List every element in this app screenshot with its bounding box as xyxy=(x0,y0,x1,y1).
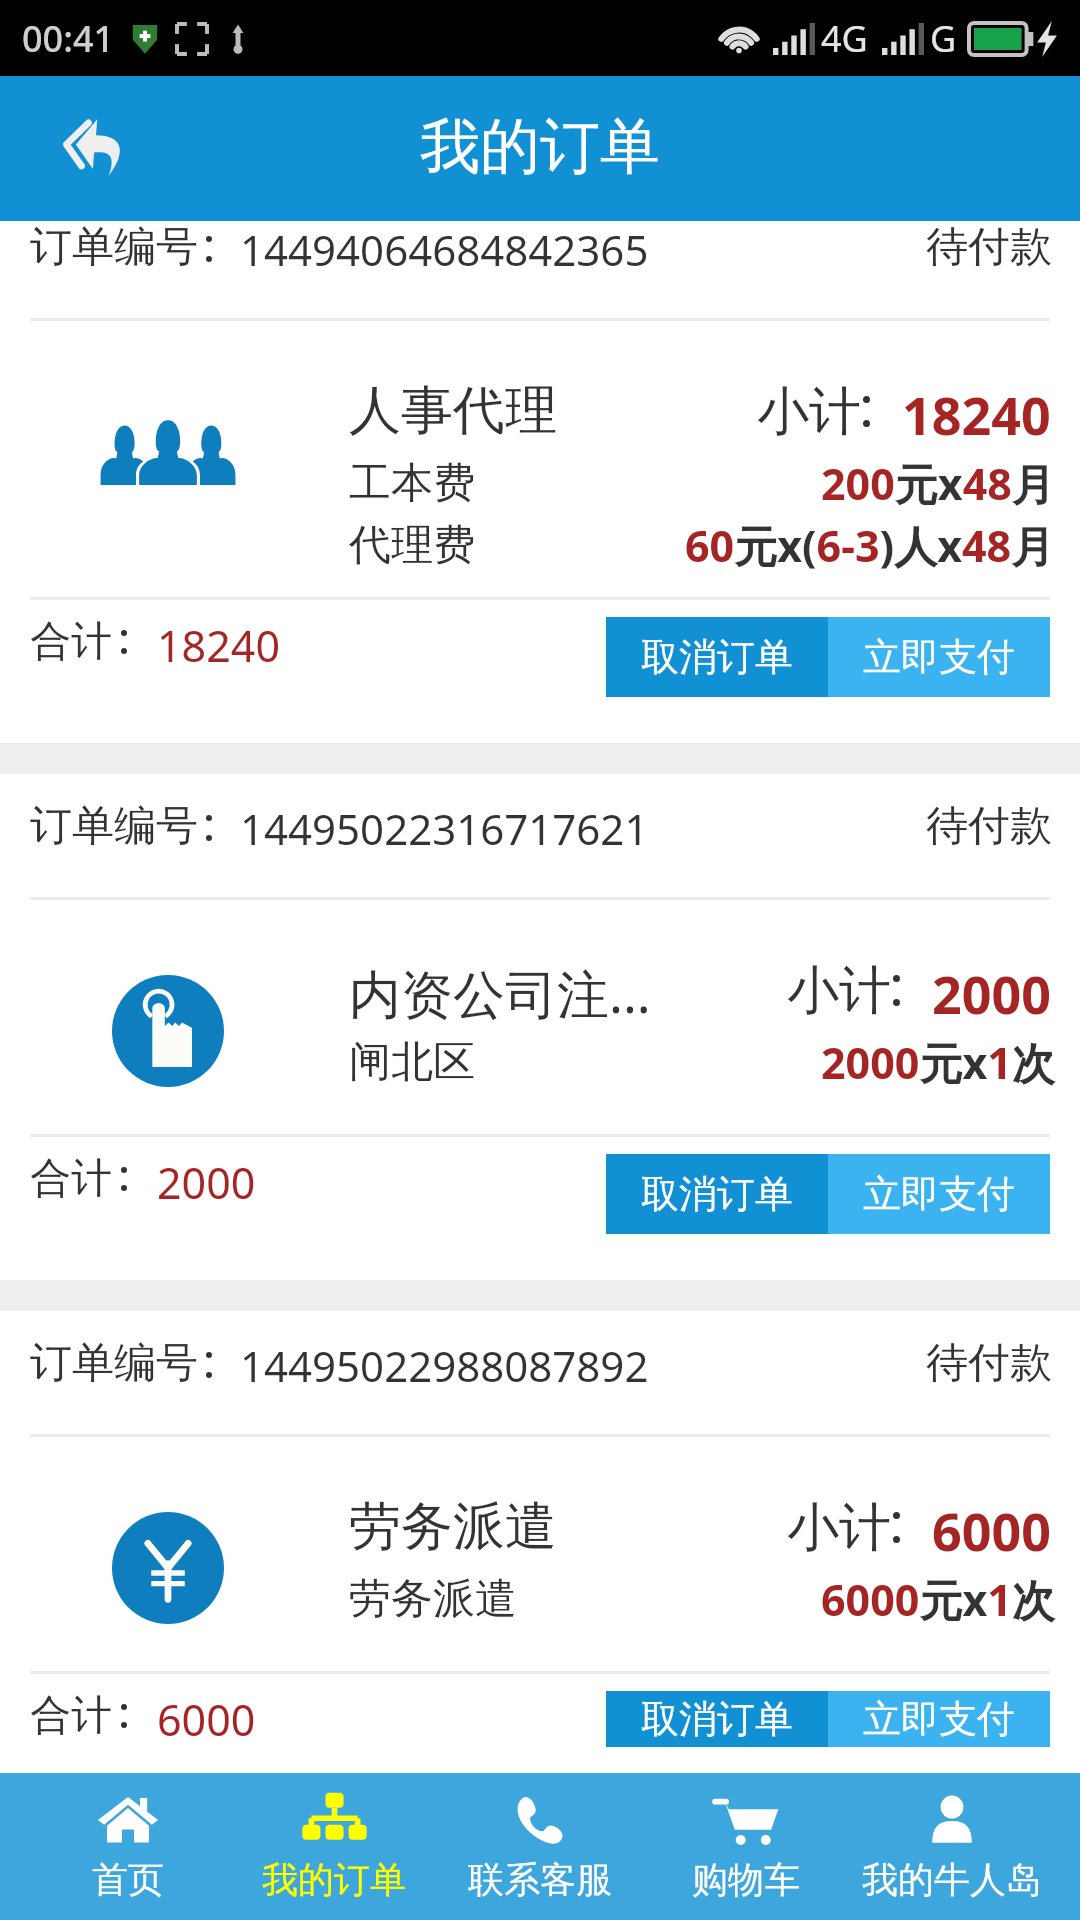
staticText: 我的订单 xyxy=(420,109,660,185)
button[interactable]: 订单编号 xyxy=(0,1311,1080,1747)
staticText: 18240 xyxy=(902,379,1051,450)
staticText: G xyxy=(930,14,957,63)
staticText: 我的订单 xyxy=(262,1857,406,1902)
staticText: 2000元x1次 xyxy=(821,1033,1055,1092)
staticText: 00:41 xyxy=(22,14,115,63)
staticText: 我的牛人岛 xyxy=(862,1857,1042,1902)
staticText: 人事代理 xyxy=(349,378,557,444)
button[interactable]: 取消订单 xyxy=(606,617,828,697)
staticText: 劳务派遣 xyxy=(349,1573,517,1626)
staticText: 购物车 xyxy=(692,1857,800,1902)
staticText: 4G xyxy=(821,14,868,63)
staticText: 代理费 xyxy=(349,519,475,572)
staticText: 联系客服 xyxy=(468,1857,612,1902)
staticText: 订单编号 xyxy=(30,221,198,274)
button[interactable]: 我的牛人岛 xyxy=(849,1773,1055,1920)
button[interactable]: 立即支付 xyxy=(828,617,1050,697)
staticText: 200元x48月 xyxy=(821,454,1055,513)
button[interactable]: 我的订单 xyxy=(231,1773,437,1920)
staticText: 首页 xyxy=(92,1857,164,1902)
staticText: 18240 xyxy=(157,616,280,675)
staticText: 合计 xyxy=(30,1153,112,1205)
staticText: 取消订单 xyxy=(641,1170,793,1218)
staticText: 小计 xyxy=(757,379,861,445)
button[interactable]: 立即支付 xyxy=(828,1691,1050,1747)
staticText: 立即支付 xyxy=(863,1695,1015,1743)
staticText: 合计 xyxy=(30,616,112,668)
button[interactable]: 取消订单 xyxy=(606,1691,828,1747)
staticText: 待付款 xyxy=(926,800,1052,853)
staticText: 2000 xyxy=(157,1153,256,1212)
staticText: 内资公司注... xyxy=(349,957,651,1028)
staticText: 立即支付 xyxy=(863,633,1015,681)
staticText: 订单编号 xyxy=(30,800,198,853)
button[interactable]: 返回 xyxy=(20,78,140,218)
staticText: 订单编号 xyxy=(30,1337,198,1390)
staticText: 劳务派遣 xyxy=(349,1494,557,1560)
button[interactable]: 立即支付 xyxy=(828,1154,1050,1234)
staticText: 60元x(6-3)人x48月 xyxy=(685,516,1055,575)
staticText: 小计 xyxy=(787,958,891,1024)
staticText: 14494064684842365 xyxy=(240,221,649,278)
button[interactable]: 取消订单 xyxy=(606,1154,828,1234)
staticText: 待付款 xyxy=(926,1337,1052,1390)
staticText: 小计 xyxy=(787,1495,891,1561)
staticText: 取消订单 xyxy=(641,633,793,681)
button[interactable]: 联系客服 xyxy=(437,1773,643,1920)
staticText: 待付款 xyxy=(926,221,1052,274)
staticText: 14495022316717621 xyxy=(240,800,649,857)
staticText: 闸北区 xyxy=(349,1036,475,1089)
staticText: 2000 xyxy=(932,958,1051,1029)
staticText: 6000 xyxy=(932,1495,1051,1566)
staticText: 14495022988087892 xyxy=(240,1337,649,1394)
staticText: 立即支付 xyxy=(863,1170,1015,1218)
button[interactable]: 首页 xyxy=(25,1773,231,1920)
staticText: 工本费 xyxy=(349,457,475,510)
staticText: 6000元x1次 xyxy=(821,1570,1055,1629)
button[interactable]: 订单编号 xyxy=(0,221,1080,743)
button[interactable]: 订单编号 xyxy=(0,774,1080,1280)
staticText: 合计 xyxy=(30,1690,112,1742)
staticText: 取消订单 xyxy=(641,1695,793,1743)
button[interactable]: 购物车 xyxy=(643,1773,849,1920)
staticText: 6000 xyxy=(157,1690,256,1747)
